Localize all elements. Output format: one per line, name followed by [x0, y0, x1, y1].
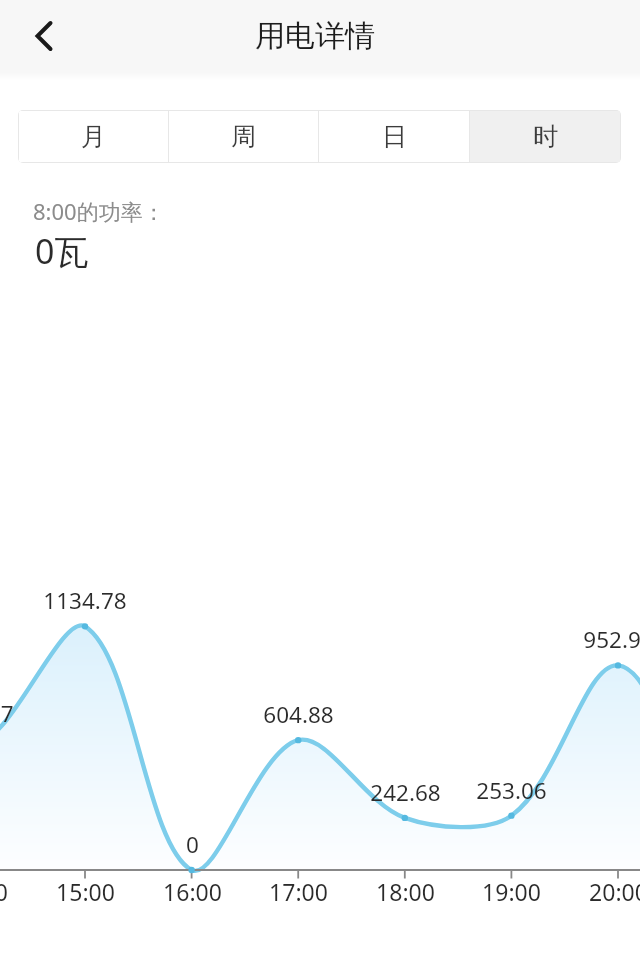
staticText: 604.88: [263, 699, 334, 730]
staticText: 18:00: [376, 876, 435, 907]
staticText: 月: [81, 121, 106, 152]
staticText: 周: [231, 121, 256, 152]
staticText: 952.93: [583, 624, 640, 655]
staticText: 609.27: [0, 698, 14, 729]
staticText: 0瓦: [35, 228, 89, 274]
staticText: 时: [533, 121, 558, 152]
button[interactable]: Back: [25, 17, 63, 55]
staticText: 253.06: [476, 775, 547, 806]
staticText: 242.68: [370, 777, 441, 808]
staticText: 用电详情: [255, 17, 375, 55]
staticText: 16:00: [163, 876, 222, 907]
staticText: 20:00: [589, 876, 640, 907]
staticText: 0: [186, 829, 199, 860]
button[interactable]: 时: [470, 111, 620, 162]
staticText: 14:00: [0, 876, 8, 907]
staticText: 19:00: [482, 876, 541, 907]
button[interactable]: 月: [19, 111, 168, 162]
staticText: 15:00: [56, 876, 115, 907]
button[interactable]: 日: [319, 111, 469, 162]
staticText: 1134.78: [43, 585, 127, 616]
staticText: 17:00: [269, 876, 328, 907]
button[interactable]: 周: [169, 111, 318, 162]
staticText: 日: [382, 121, 407, 152]
staticText: 8:00的功率：: [33, 196, 165, 226]
